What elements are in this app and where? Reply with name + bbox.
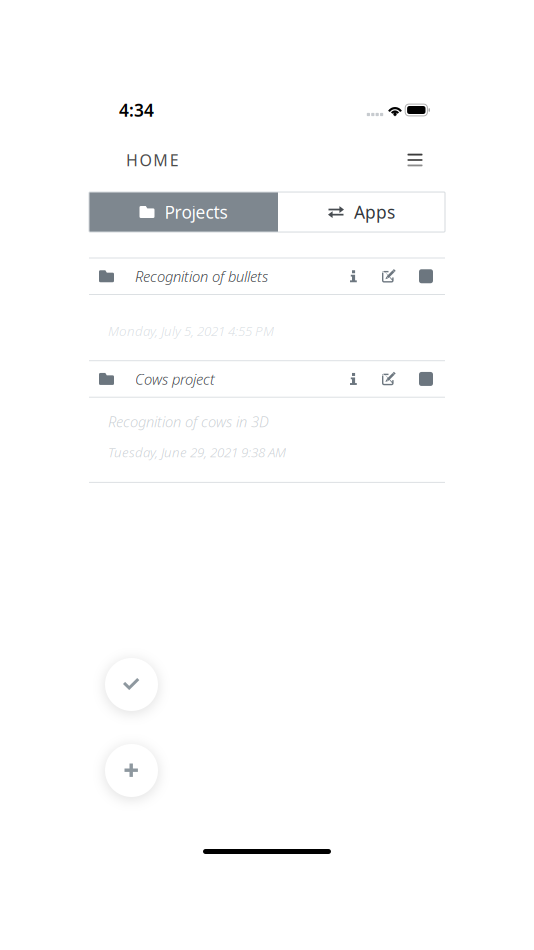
button[interactable]: Recognition of bullets [89, 258, 445, 294]
button[interactable]: Done [105, 658, 158, 711]
button[interactable]: Apps [278, 192, 445, 232]
staticText: Recognition of cows in 3D [108, 412, 269, 431]
staticText: Tuesday, June 29, 2021 9:38 AM [108, 443, 286, 461]
staticText: Monday, July 5, 2021 4:55 PM [108, 322, 274, 340]
staticText: Cows project [135, 369, 215, 389]
staticText: H [126, 149, 138, 171]
staticText: E [170, 149, 179, 171]
staticText: 4:34 [119, 98, 154, 121]
staticText: M [153, 149, 168, 171]
staticText: O [140, 149, 152, 171]
staticText: Recognition of bullets [135, 266, 268, 286]
button[interactable]: Cows project [89, 361, 445, 397]
button[interactable]: Add [105, 744, 158, 797]
button[interactable]: Projects [89, 192, 278, 232]
button[interactable]: Menu [401, 146, 429, 174]
staticText: Projects [164, 200, 227, 223]
staticText: Apps [354, 200, 395, 223]
